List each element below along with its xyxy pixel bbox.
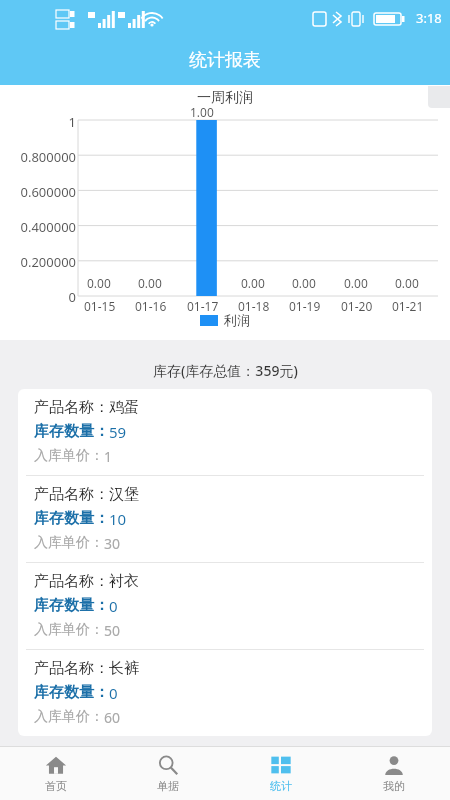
staticText: 0.00 [292, 275, 316, 291]
staticText: 1 [104, 447, 113, 466]
staticText: 入库单价： [34, 534, 104, 552]
staticText: 产品名称： [34, 659, 109, 678]
staticText: 产品名称： [34, 572, 109, 591]
staticText: 0.600000 [4, 183, 76, 201]
staticText: 50 [104, 621, 121, 640]
staticText: 0 [4, 288, 76, 306]
button[interactable]: 首页 [0, 747, 112, 800]
staticText: 0.00 [87, 275, 111, 291]
staticText: 产品名称： [34, 398, 109, 417]
staticText: 库存数量： [34, 683, 109, 702]
staticText: 单据 [157, 779, 179, 793]
staticText: 01-20 [341, 298, 373, 314]
staticText: 统计报表 [189, 49, 261, 72]
staticText: 首页 [45, 779, 67, 793]
staticText: 入库单价： [34, 621, 104, 639]
staticText: 库存数量： [34, 422, 109, 441]
staticText: 长裤 [109, 659, 139, 678]
button[interactable]: 产品名称： [18, 650, 432, 736]
staticText: 入库单价： [34, 447, 104, 465]
staticText: 01-15 [84, 298, 116, 314]
staticText: 0.00 [241, 275, 265, 291]
button[interactable]: 统计 [224, 747, 337, 800]
button[interactable]: 我的 [337, 747, 450, 800]
staticText: 01-16 [135, 298, 167, 314]
staticText: 入库单价： [34, 708, 104, 726]
staticText: 1.00 [190, 104, 214, 120]
staticText: 0.00 [138, 275, 162, 291]
staticText: 0.400000 [4, 218, 76, 236]
staticText: 一周利润 [197, 89, 253, 107]
staticText: 衬衣 [109, 572, 139, 591]
staticText: 0 [109, 683, 118, 703]
staticText: 统计 [270, 779, 292, 793]
staticText: 3:18 [416, 9, 442, 27]
button[interactable]: 产品名称： [18, 389, 432, 475]
staticText: 库存数量： [34, 509, 109, 528]
button[interactable]: 单据 [112, 747, 224, 800]
staticText: 我的 [383, 779, 405, 793]
staticText: 汉堡 [109, 485, 139, 504]
button[interactable]: 产品名称： [18, 476, 432, 562]
staticText: 1 [4, 113, 76, 131]
staticText: 01-17 [187, 298, 219, 314]
staticText: 0.200000 [4, 253, 76, 271]
staticText: 库存(库存总值：359元) [153, 361, 298, 380]
staticText: 产品名称： [34, 485, 109, 504]
staticText: 0.800000 [4, 148, 76, 166]
staticText: 10 [109, 509, 127, 529]
staticText: 01-19 [289, 298, 321, 314]
staticText: 59 [109, 422, 127, 442]
staticText: 0 [109, 596, 118, 616]
staticText: 60 [104, 708, 121, 727]
staticText: 0.00 [344, 275, 368, 291]
staticText: 01-18 [238, 298, 270, 314]
button[interactable]: 产品名称： [18, 563, 432, 649]
staticText: 鸡蛋 [109, 398, 139, 417]
staticText: 30 [104, 534, 121, 553]
staticText: 0.00 [395, 275, 419, 291]
staticText: 库存数量： [34, 596, 109, 615]
staticText: 01-21 [392, 298, 424, 314]
staticText: 利润 [224, 312, 250, 328]
